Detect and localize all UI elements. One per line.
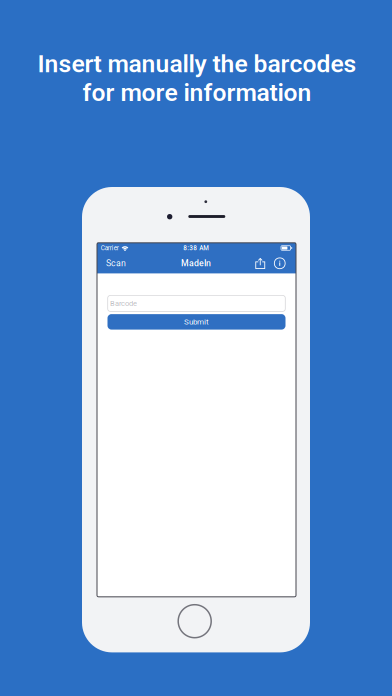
- staticText: Scan: [106, 258, 126, 268]
- staticText: Insert manually the barcodes: [37, 49, 356, 78]
- button[interactable]: Submit: [107, 314, 285, 330]
- staticText: for more information: [82, 78, 311, 107]
- staticText: Submit: [184, 317, 209, 327]
- staticText: 8:38 AM: [183, 244, 209, 252]
- button[interactable]: Share: [253, 253, 267, 273]
- staticText: Barcode: [110, 299, 137, 308]
- button[interactable]: Scan: [101, 253, 130, 273]
- staticText: MadeIn: [181, 258, 211, 268]
- button[interactable]: Info: [272, 253, 287, 273]
- staticText: Carrier: [101, 244, 119, 252]
